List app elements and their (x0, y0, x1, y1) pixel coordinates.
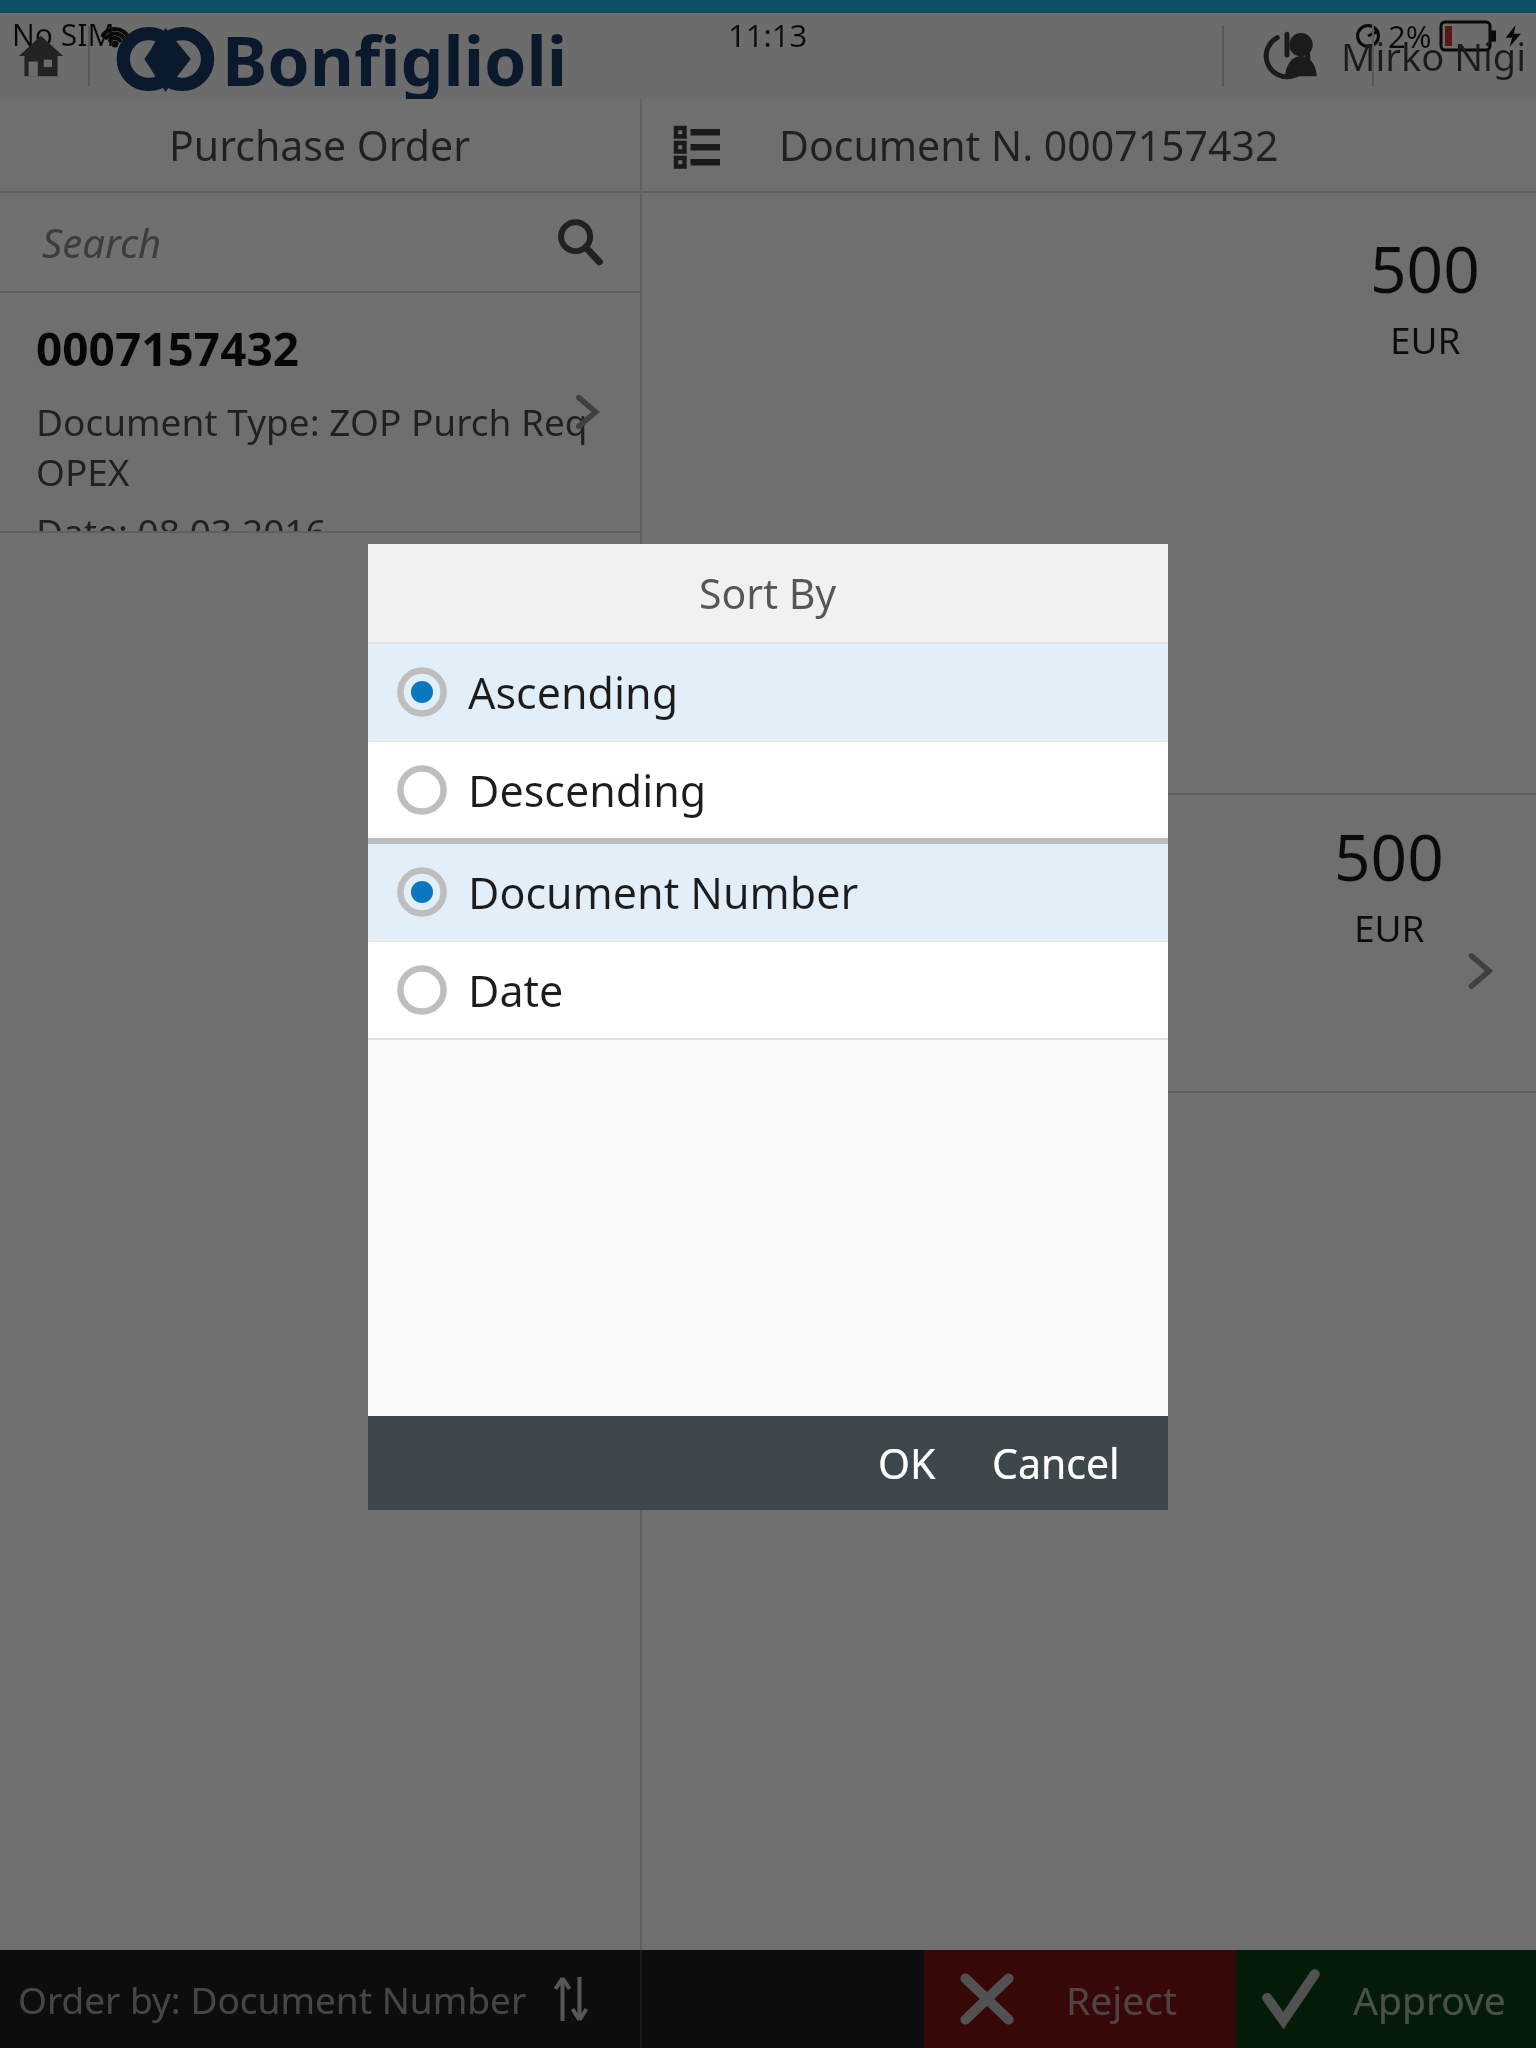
button[interactable]: Search (8, 203, 632, 281)
button[interactable]: OK (850, 1419, 964, 1507)
button[interactable]: Document Number (368, 844, 1168, 940)
button[interactable]: Reject (924, 1950, 1236, 2048)
staticText: EUR (1390, 314, 1461, 364)
button[interactable]: 0007157432 (0, 293, 640, 531)
staticText: Ascending (468, 663, 679, 722)
button[interactable]: Mirko Nigi (1273, 28, 1526, 84)
staticText: Order by: Document Number (18, 1974, 527, 2024)
button[interactable]: 500 (642, 795, 1536, 1091)
button[interactable]: Descending (368, 742, 1168, 838)
staticText: Document Number (468, 863, 859, 922)
staticText: 0007157432 (36, 317, 300, 380)
staticText: Sort By (699, 565, 837, 621)
staticText: Search (42, 215, 162, 269)
staticText: EUR (1354, 902, 1425, 952)
staticText: Cancel (992, 1435, 1120, 1491)
staticText: 500 (1334, 813, 1444, 900)
button[interactable]: Approve (1236, 1950, 1536, 2048)
button[interactable]: Date (368, 942, 1168, 1038)
staticText: 500 (1370, 225, 1480, 312)
staticText: 11:13 (728, 14, 808, 56)
staticText: OK (878, 1435, 936, 1491)
staticText: Reject (1066, 1973, 1178, 2026)
staticText: Approve (1353, 1973, 1506, 2026)
button[interactable]: Ascending (368, 644, 1168, 740)
staticText: Bonfiglioli (222, 13, 568, 99)
staticText: Purchase Order (169, 117, 471, 173)
button[interactable]: List (666, 112, 732, 178)
staticText: No SIM (12, 14, 115, 55)
staticText: Document N. 0007157432 (779, 117, 1279, 173)
staticText: Date: 08.03.2016 (36, 506, 327, 531)
staticText: Document Type: ZOP Purch Req OPEX (36, 396, 640, 496)
button[interactable]: Order by: Document Number (0, 1950, 640, 2048)
button[interactable]: Home (10, 25, 72, 87)
staticText: 2% (1388, 15, 1432, 57)
button[interactable]: Power (1250, 19, 1324, 93)
staticText: Mirko Nigi (1341, 30, 1526, 82)
staticText: Descending (468, 761, 707, 820)
staticText: Date (468, 961, 564, 1020)
button[interactable]: Cancel (964, 1419, 1168, 1507)
